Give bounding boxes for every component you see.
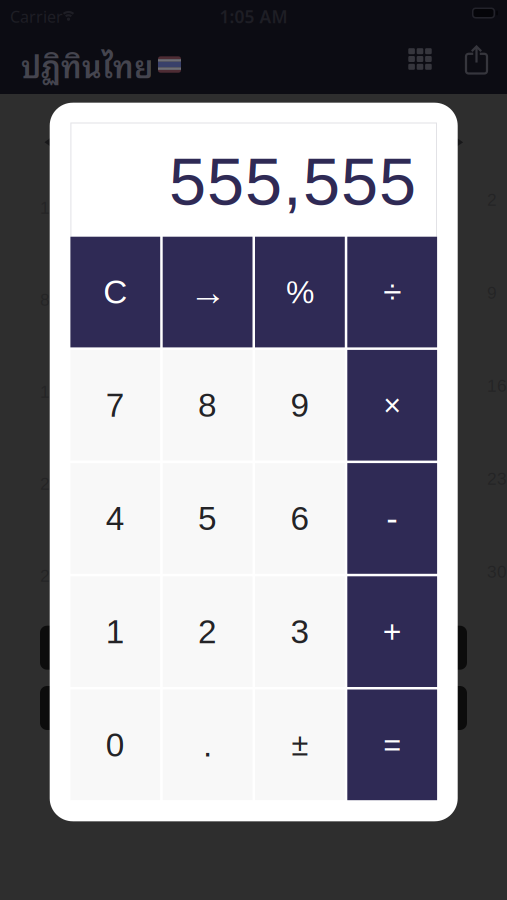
staticText: C <box>103 273 127 311</box>
staticText: 8 <box>198 387 217 424</box>
staticText: 9 <box>487 283 497 302</box>
button[interactable]: 4 <box>70 463 160 574</box>
button[interactable]: Share <box>465 45 489 75</box>
button[interactable]: 9 <box>255 350 345 461</box>
button[interactable]: 2 <box>163 576 252 687</box>
button[interactable]: ÷ <box>347 237 437 347</box>
staticText: 6 <box>290 500 309 537</box>
staticText: 0 <box>106 726 125 763</box>
staticText: 23 <box>487 469 507 488</box>
staticText: 1:05 AM <box>219 5 287 28</box>
button[interactable]: 5 <box>163 463 252 574</box>
staticText: 2 <box>487 190 497 209</box>
staticText: 22 <box>40 474 60 493</box>
button[interactable]: % <box>255 237 345 347</box>
button[interactable]: × <box>347 350 437 461</box>
button[interactable]: - <box>347 463 437 574</box>
staticText: ปฏิทินไทย <box>21 40 153 89</box>
button[interactable]: 1 <box>70 576 160 687</box>
staticText: 7 <box>106 387 125 424</box>
staticText: . <box>203 726 212 763</box>
staticText: Carrier <box>10 6 63 27</box>
staticText: 4 <box>106 500 125 537</box>
staticText: 8 <box>40 290 50 309</box>
button[interactable]: 7 <box>70 350 160 461</box>
button[interactable]: + <box>347 576 437 687</box>
staticText: 2 <box>198 613 217 650</box>
staticText: ± <box>291 728 308 762</box>
staticText: × <box>383 388 401 422</box>
button[interactable]: 3 <box>255 576 345 687</box>
button[interactable]: ± <box>255 689 345 800</box>
staticText: → <box>189 271 226 313</box>
button[interactable]: = <box>347 689 437 800</box>
button[interactable]: . <box>163 689 252 800</box>
staticText: + <box>383 614 402 650</box>
button[interactable]: → <box>163 237 252 347</box>
staticText: 30 <box>487 562 507 581</box>
button[interactable]: Layout grid <box>408 48 432 70</box>
button[interactable]: 0 <box>70 689 160 800</box>
staticText: 9 <box>290 387 309 424</box>
staticText: 555,555 <box>169 144 416 219</box>
staticText: 1 <box>40 198 50 217</box>
button[interactable]: C <box>70 237 160 347</box>
staticText: 29 <box>40 566 60 585</box>
button[interactable]: 6 <box>255 463 345 574</box>
button[interactable]: 8 <box>163 350 252 461</box>
staticText: - <box>386 499 398 538</box>
staticText: 3 <box>290 613 309 650</box>
staticText: 5 <box>198 500 217 537</box>
staticText: 1 <box>106 613 125 650</box>
staticText: ÷ <box>383 273 401 311</box>
staticText: = <box>383 728 401 762</box>
staticText: 16 <box>487 376 507 395</box>
staticText: % <box>286 274 314 310</box>
staticText: 15 <box>40 382 60 401</box>
